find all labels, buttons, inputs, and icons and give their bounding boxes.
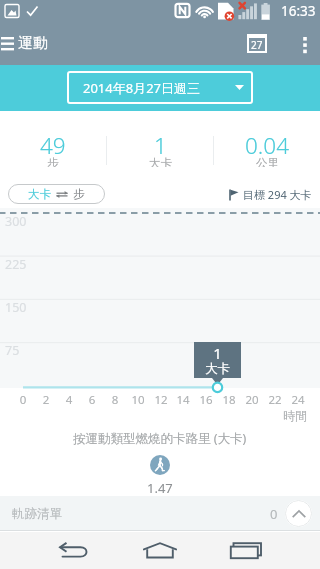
staticText: 22 (263, 392, 287, 408)
button[interactable]: 軌跡清單 (12, 496, 312, 531)
button[interactable]: Recents (211, 532, 281, 569)
staticText: 8 (103, 392, 127, 408)
staticText: 4 (57, 392, 81, 408)
staticText: 0 (270, 505, 278, 523)
staticText: 運動 (18, 34, 48, 53)
staticText: 27 (251, 38, 263, 51)
staticText: 300 (5, 213, 27, 230)
staticText: 1 (154, 130, 167, 161)
staticText: 12 (149, 392, 173, 408)
staticText: 18 (217, 392, 241, 408)
staticText: 20 (240, 392, 264, 408)
staticText: 75 (5, 342, 20, 359)
staticText: 2 (34, 392, 58, 408)
staticText: 步 (47, 156, 59, 167)
staticText: 16:33 (281, 2, 316, 20)
button[interactable]: Home (125, 532, 195, 569)
button[interactable]: 0.04 (214, 130, 320, 172)
staticText: 目標 294 大卡 (243, 187, 312, 202)
button[interactable]: Back (39, 532, 109, 569)
button[interactable]: Walking (150, 455, 170, 475)
staticText: 225 (5, 256, 27, 273)
staticText: 16 (194, 392, 218, 408)
staticText: 按運動類型燃燒的卡路里 (大卡) (73, 430, 247, 447)
button[interactable]: 49 (0, 130, 106, 172)
staticText: 時間 (283, 408, 307, 423)
button[interactable]: 2014年8月27日週三 (67, 71, 253, 104)
staticText: 2014年8月27日週三 (83, 79, 201, 97)
button[interactable]: Menu (0, 22, 18, 65)
staticText: 24 (286, 392, 310, 408)
staticText: 公里 (256, 156, 279, 167)
staticText: 大卡 (205, 361, 230, 377)
button[interactable]: More options (290, 22, 320, 65)
staticText: 10 (126, 392, 150, 408)
staticText: 6 (80, 392, 104, 408)
staticText: 軌跡清單 (12, 506, 62, 522)
staticText: 大卡 (28, 187, 51, 201)
staticText: 大卡 (149, 156, 172, 167)
button[interactable]: Expand (285, 500, 312, 527)
button[interactable]: 1 (107, 130, 213, 172)
staticText: 49 (40, 130, 66, 161)
staticText: 1.47 (147, 479, 173, 497)
staticText: 步 (73, 187, 85, 201)
staticText: 1 (213, 343, 222, 363)
button[interactable]: 大卡 (8, 184, 105, 204)
button[interactable]: Calendar (240, 22, 274, 65)
staticText: 14 (171, 392, 195, 408)
staticText: 150 (5, 299, 27, 316)
staticText: 0.04 (245, 130, 290, 161)
staticText: 0 (11, 392, 35, 408)
